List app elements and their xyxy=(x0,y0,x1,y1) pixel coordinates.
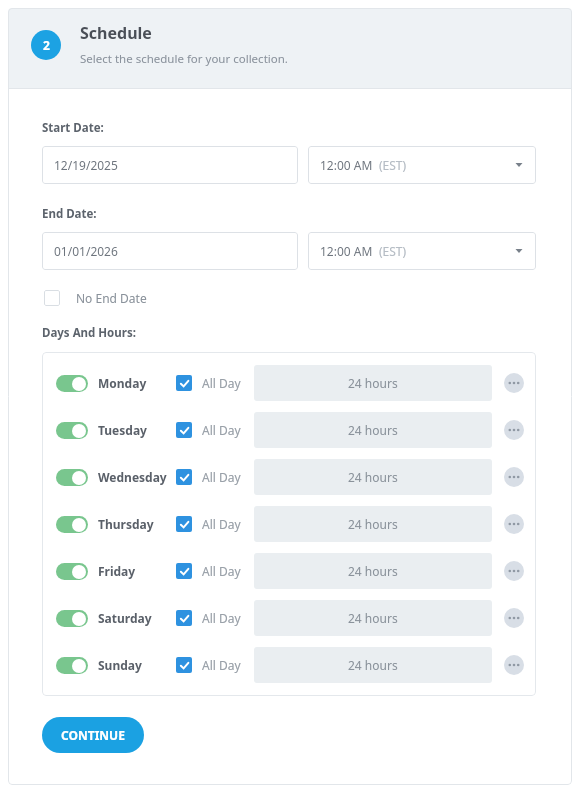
staticText: Start Date: xyxy=(42,120,104,136)
staticText: 01/01/2026 xyxy=(54,243,118,259)
staticText: No End Date xyxy=(76,290,147,306)
button[interactable]: Toggle Tuesday xyxy=(56,422,88,439)
staticText: CONTINUE xyxy=(61,727,125,743)
button[interactable]: 24 hours xyxy=(254,365,492,401)
staticText: 12/19/2025 xyxy=(54,157,118,173)
button[interactable]: All Day xyxy=(176,563,241,579)
button[interactable]: 24 hours xyxy=(254,600,492,636)
button[interactable]: More options for Saturday xyxy=(504,608,524,628)
staticText: All Day xyxy=(202,422,241,438)
staticText: Thursday xyxy=(98,516,154,532)
button[interactable]: All Day xyxy=(176,422,241,438)
button[interactable]: Toggle Friday xyxy=(56,563,88,580)
staticText: Friday xyxy=(98,563,136,579)
button[interactable]: All Day xyxy=(176,469,241,485)
button[interactable]: More options for Tuesday xyxy=(504,420,524,440)
staticText: 24 hours xyxy=(348,469,398,485)
staticText: All Day xyxy=(202,469,241,485)
staticText: Schedule xyxy=(80,22,152,44)
staticText: All Day xyxy=(202,563,241,579)
button[interactable]: More options for Monday xyxy=(504,373,524,393)
staticText: 24 hours xyxy=(348,516,398,532)
staticText: 24 hours xyxy=(348,657,398,673)
staticText: 2 xyxy=(43,37,50,53)
button[interactable]: Toggle Thursday xyxy=(56,516,88,533)
staticText: 12:00 AM xyxy=(320,243,373,259)
staticText: All Day xyxy=(202,516,241,532)
button[interactable]: All Day xyxy=(176,375,241,391)
button[interactable]: 24 hours xyxy=(254,506,492,542)
button[interactable]: 12:00 AM xyxy=(308,232,536,270)
button[interactable]: All Day xyxy=(176,657,241,673)
staticText: 24 hours xyxy=(348,375,398,391)
button[interactable]: 12/19/2025 xyxy=(42,146,298,184)
staticText: End Date: xyxy=(42,206,97,222)
staticText: All Day xyxy=(202,657,241,673)
staticText: (EST) xyxy=(379,243,407,259)
button[interactable]: 24 hours xyxy=(254,647,492,683)
staticText: All Day xyxy=(202,375,241,391)
button[interactable]: 12:00 AM xyxy=(308,146,536,184)
button[interactable]: More options for Wednesday xyxy=(504,467,524,487)
button[interactable]: More options for Sunday xyxy=(504,655,524,675)
staticText: Sunday xyxy=(98,657,142,673)
button[interactable]: No End Date xyxy=(42,288,147,308)
button[interactable]: Toggle Saturday xyxy=(56,610,88,627)
button[interactable]: 01/01/2026 xyxy=(42,232,298,270)
staticText: Saturday xyxy=(98,610,152,626)
button[interactable]: Toggle Wednesday xyxy=(56,469,88,486)
button[interactable]: 24 hours xyxy=(254,412,492,448)
button[interactable]: More options for Thursday xyxy=(504,514,524,534)
button[interactable]: 24 hours xyxy=(254,553,492,589)
button[interactable]: Toggle Sunday xyxy=(56,657,88,674)
staticText: 24 hours xyxy=(348,610,398,626)
staticText: Wednesday xyxy=(98,469,167,485)
staticText: Days And Hours: xyxy=(42,325,136,341)
staticText: 24 hours xyxy=(348,422,398,438)
button[interactable]: 24 hours xyxy=(254,459,492,495)
staticText: (EST) xyxy=(379,157,407,173)
button[interactable]: All Day xyxy=(176,516,241,532)
button[interactable]: All Day xyxy=(176,610,241,626)
staticText: Monday xyxy=(98,375,147,391)
button[interactable]: More options for Friday xyxy=(504,561,524,581)
staticText: All Day xyxy=(202,610,241,626)
staticText: 12:00 AM xyxy=(320,157,373,173)
button[interactable]: Toggle Monday xyxy=(56,375,88,392)
staticText: 24 hours xyxy=(348,563,398,579)
button[interactable]: CONTINUE xyxy=(42,717,144,753)
staticText: Select the schedule for your collection. xyxy=(80,51,288,67)
staticText: Tuesday xyxy=(98,422,147,438)
